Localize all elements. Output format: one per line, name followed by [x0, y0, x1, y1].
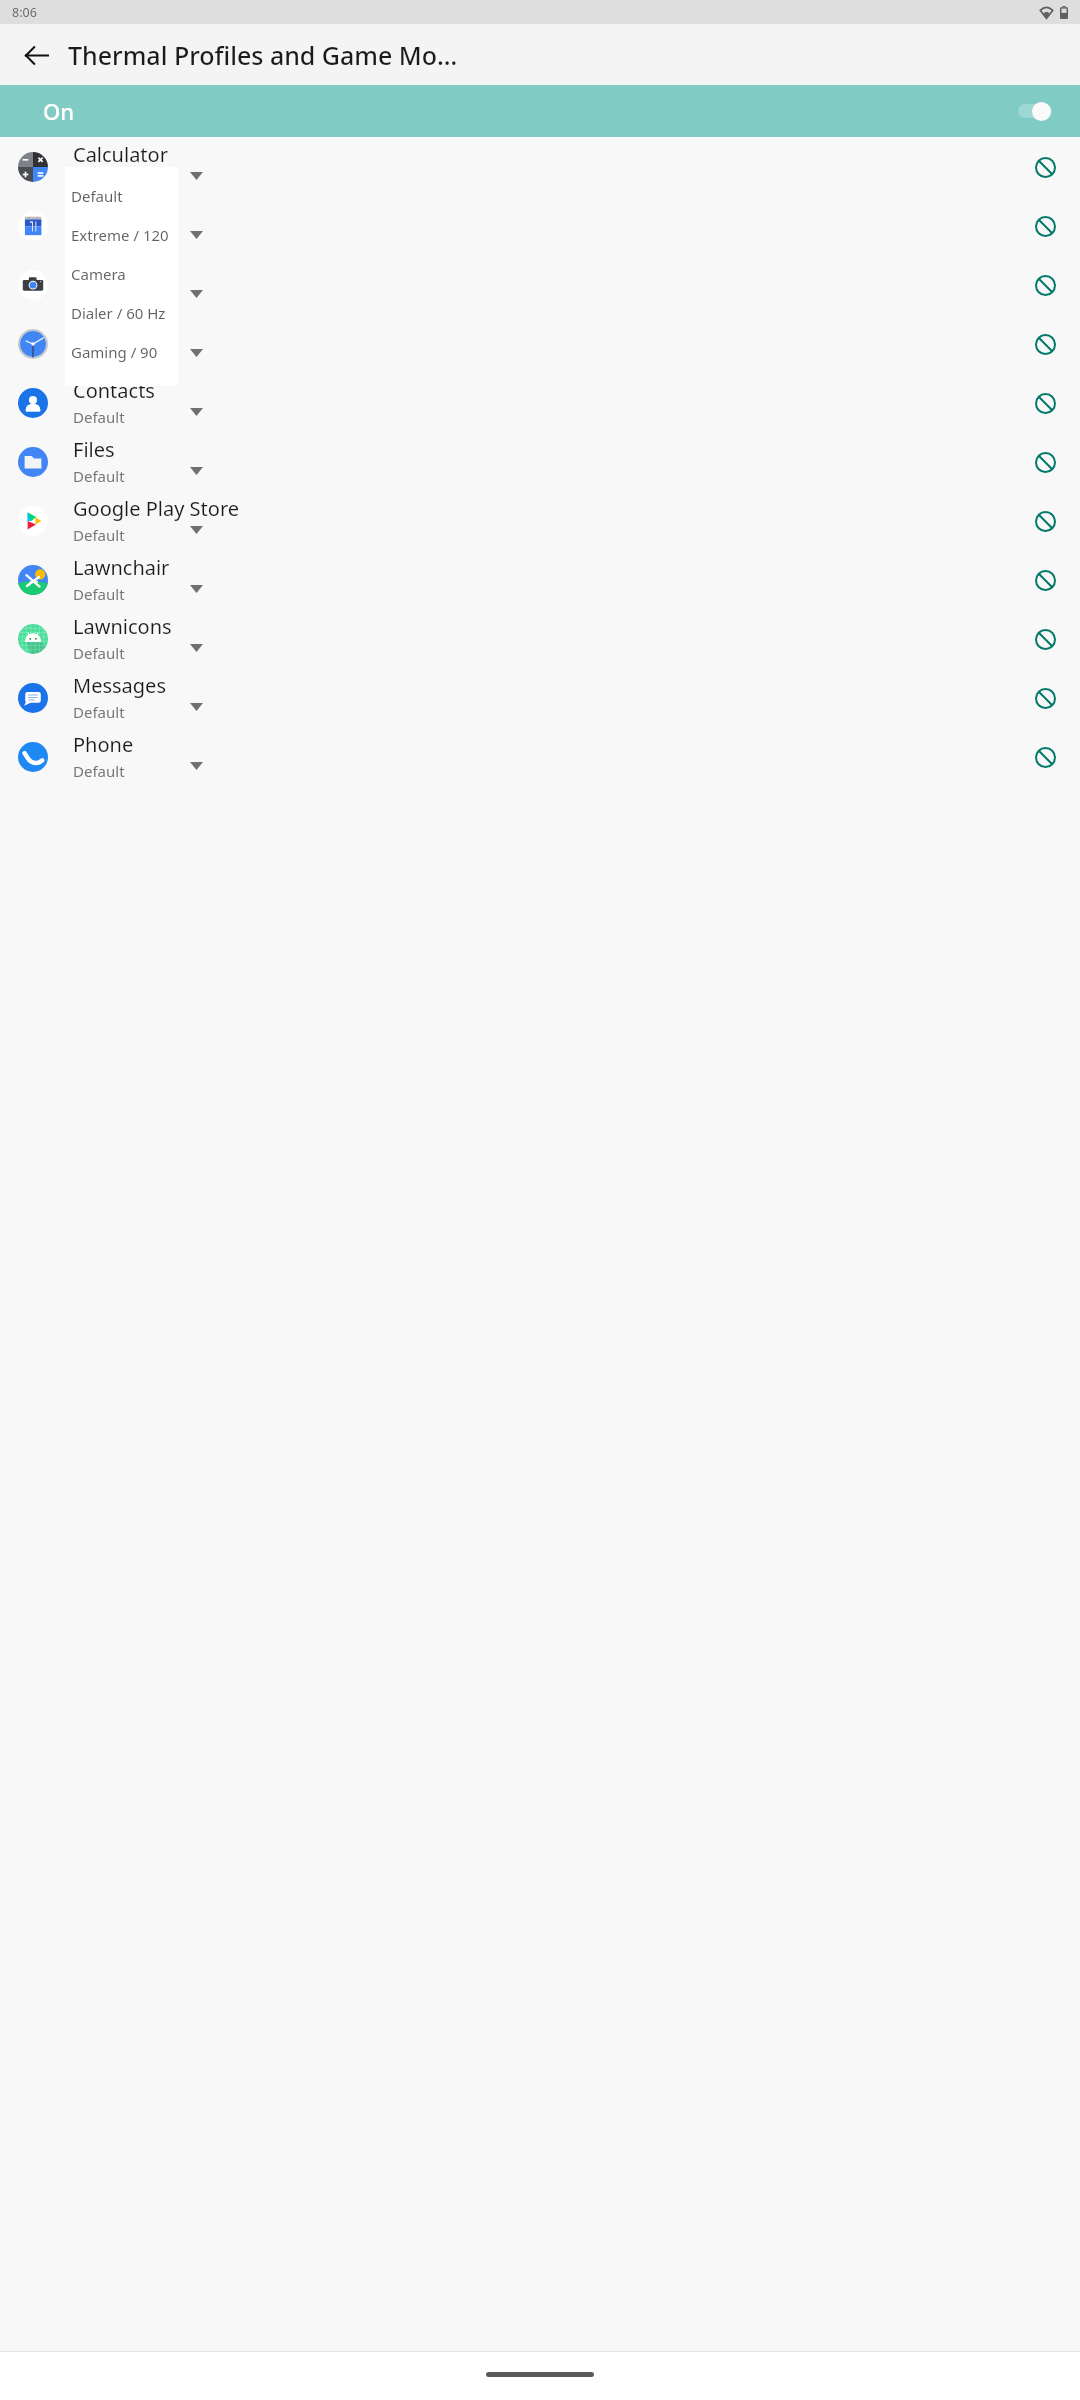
button[interactable]: Block Messages: [1025, 678, 1065, 718]
staticText: Lawnchair: [73, 554, 170, 581]
button[interactable]: Calculator: [0, 137, 1080, 196]
button[interactable]: Calendar: [0, 196, 1080, 255]
staticText: Calculator: [73, 141, 168, 168]
button[interactable]: Files: [0, 432, 1080, 491]
staticText: Messages: [73, 672, 166, 699]
staticText: Camera: [73, 259, 146, 286]
button[interactable]: Camera: [0, 255, 1080, 314]
button[interactable]: Contacts: [0, 373, 1080, 432]
button[interactable]: Block Clock: [1025, 324, 1065, 364]
staticText: Extreme / 120 Hz: [71, 225, 178, 245]
staticText: Lawnicons: [73, 613, 172, 640]
staticText: Default: [73, 348, 125, 368]
staticText: Default: [73, 643, 125, 663]
staticText: Default: [73, 525, 125, 545]
staticText: Default: [73, 407, 125, 427]
button[interactable]: Google Play Store: [0, 491, 1080, 550]
button[interactable]: Block Lawnicons: [1025, 619, 1065, 659]
staticText: Google Play Store: [73, 495, 240, 522]
button[interactable]: Clock: [0, 314, 1080, 373]
staticText: Calendar: [73, 200, 158, 227]
button[interactable]: Camera: [65, 254, 178, 293]
button[interactable]: Messages: [0, 668, 1080, 727]
button[interactable]: Block Phone: [1025, 737, 1065, 777]
button[interactable]: Phone: [0, 727, 1080, 786]
button[interactable]: Block Calculator: [1025, 147, 1065, 187]
button[interactable]: Back: [10, 29, 62, 81]
staticText: Default: [73, 230, 125, 250]
staticText: Gaming / 90 Hz: [71, 342, 178, 362]
staticText: 8:06: [12, 4, 37, 21]
staticText: Dialer / 60 Hz: [71, 303, 166, 323]
button[interactable]: Block Files: [1025, 442, 1065, 482]
staticText: Default: [73, 466, 125, 486]
staticText: Contacts: [73, 377, 155, 404]
staticText: Default: [73, 584, 125, 604]
staticText: Phone: [73, 731, 134, 758]
button[interactable]: Block Calendar: [1025, 206, 1065, 246]
button[interactable]: Block Camera: [1025, 265, 1065, 305]
button[interactable]: Block Lawnchair: [1025, 560, 1065, 600]
button[interactable]: Gaming / 90 Hz: [65, 332, 178, 371]
button[interactable]: Lawnchair: [0, 550, 1080, 609]
button[interactable]: Block Contacts: [1025, 383, 1065, 423]
staticText: Default: [73, 761, 125, 781]
staticText: Camera: [71, 264, 126, 284]
button[interactable]: Block Google Play Store: [1025, 501, 1065, 541]
button[interactable]: Default: [65, 176, 178, 215]
staticText: Default: [73, 702, 125, 722]
button[interactable]: On: [0, 85, 1080, 137]
staticText: Default: [73, 289, 125, 309]
staticText: Thermal Profiles and Game Mo…: [68, 38, 458, 72]
staticText: Default: [71, 186, 123, 206]
staticText: On: [43, 96, 75, 126]
button[interactable]: Extreme / 120 Hz: [65, 215, 178, 254]
button[interactable]: Dialer / 60 Hz: [65, 293, 178, 332]
staticText: Clock: [73, 318, 124, 345]
button[interactable]: Lawnicons: [0, 609, 1080, 668]
staticText: Files: [73, 436, 115, 463]
